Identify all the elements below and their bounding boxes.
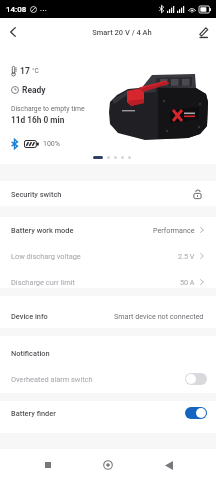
button[interactable]: Home: [95, 452, 121, 478]
button[interactable]: Back: [156, 452, 182, 478]
staticText: Battery finder: [11, 409, 56, 418]
staticText: 17: [20, 66, 30, 76]
staticText: Overheated alarm switch: [11, 375, 93, 384]
button[interactable]: Edit: [190, 19, 216, 45]
button[interactable]: Overheated alarm switch: [0, 366, 216, 392]
button[interactable]: Discharge curr limit: [0, 269, 216, 295]
staticText: 2.5 V: [178, 252, 195, 260]
staticText: Low discharg voltage: [11, 252, 81, 261]
button[interactable]: Back: [0, 19, 26, 45]
staticText: Performance: [153, 226, 195, 234]
button[interactable]: Switch off: [185, 373, 207, 385]
staticText: Discharge to empty time: [11, 105, 85, 113]
staticText: Battery work mode: [11, 226, 74, 235]
staticText: Smart 20 V / 4 Ah: [40, 28, 204, 37]
staticText: Device info: [11, 312, 48, 321]
button[interactable]: Recent apps: [35, 452, 61, 478]
button[interactable]: Security switch locked: [190, 187, 204, 201]
staticText: 14:08: [6, 5, 27, 14]
staticText: Security switch: [11, 190, 62, 199]
staticText: 50 A: [180, 278, 195, 286]
staticText: Notification: [11, 349, 50, 358]
button[interactable]: Low discharg voltage: [0, 243, 216, 269]
button[interactable]: Notification: [0, 340, 216, 366]
button[interactable]: Security switch: [0, 181, 216, 207]
button[interactable]: Battery finder: [0, 400, 216, 426]
button[interactable]: Battery work mode: [0, 217, 216, 243]
button[interactable]: Switch on: [185, 407, 207, 419]
staticText: 100%: [43, 140, 60, 148]
staticText: Smart device not connected: [114, 312, 204, 320]
staticText: °C: [32, 67, 39, 75]
staticText: 11d 16h 0 min: [11, 115, 65, 125]
staticText: Ready: [22, 85, 46, 95]
button[interactable]: Device info: [0, 303, 216, 329]
staticText: Discharge curr limit: [11, 278, 75, 287]
